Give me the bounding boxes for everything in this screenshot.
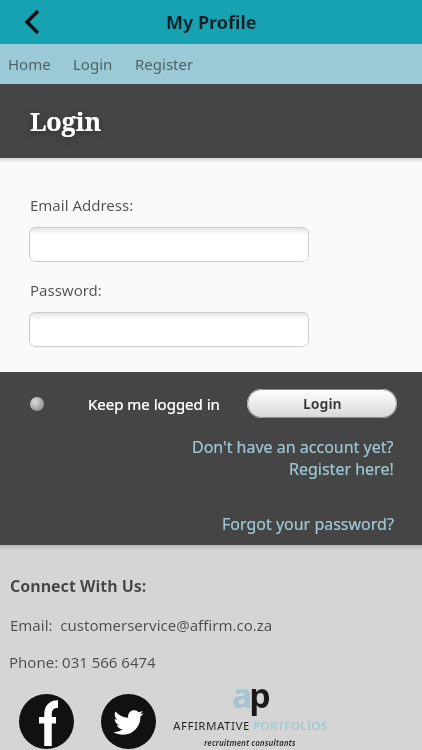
button[interactable]: Forgot your password? [222,513,394,535]
button[interactable]: Home [0,46,51,82]
staticText: Login [73,54,113,74]
staticText: Don't have an account yet? [192,436,394,458]
button[interactable] [29,312,309,347]
staticText: AFFIRMATIVE PORTFOLIOS [173,718,328,734]
staticText: Phone: 031 566 6474 [9,652,156,672]
button[interactable] [30,397,44,411]
staticText: ap [232,672,268,718]
button[interactable] [101,694,156,749]
staticText: Login [303,394,342,413]
staticText: Connect With Us: [10,575,147,597]
staticText: Login [30,104,102,138]
button[interactable] [0,0,44,44]
button[interactable] [29,227,309,262]
staticText: Register [135,54,194,74]
button[interactable]: Login [247,389,397,418]
staticText: Keep me logged in [88,394,220,414]
staticText: Email: customerservice@affirm.co.za [10,615,273,635]
button[interactable]: Register here! [289,458,394,480]
staticText: recruitment consultants [204,737,296,748]
staticText: My Profile [166,10,257,35]
staticText: Forgot your password? [222,513,394,535]
staticText: Email Address: [30,195,134,215]
button[interactable]: Login [51,46,113,82]
button[interactable]: Don't have an account yet? [192,436,394,458]
button[interactable] [19,694,74,749]
staticText: Password: [30,280,102,300]
staticText: Home [8,54,51,74]
staticText: Register here! [289,458,394,480]
button[interactable]: Register [113,46,194,82]
